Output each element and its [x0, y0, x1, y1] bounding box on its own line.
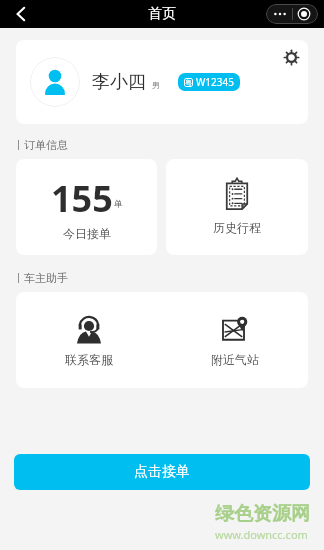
button[interactable]: 设置	[279, 45, 303, 69]
staticText: 附近气站	[211, 352, 259, 367]
staticText: W12345	[196, 75, 234, 89]
button[interactable]: 附近气站	[162, 292, 308, 388]
staticText: 男	[152, 80, 160, 90]
staticText: 今日接单	[63, 226, 111, 241]
staticText: 车主助手	[24, 271, 68, 285]
button[interactable]: 联系客服	[16, 292, 162, 388]
staticText: 粤	[185, 78, 192, 87]
staticText: 155	[51, 174, 113, 223]
button[interactable]: 历史行程	[166, 159, 308, 255]
staticText: 联系客服	[65, 352, 113, 367]
staticText: 李小四	[92, 71, 146, 94]
button[interactable]: 菜单	[266, 4, 318, 24]
staticText: 点击接单	[134, 463, 190, 481]
staticText: 绿色资源网	[215, 502, 310, 526]
staticText: 历史行程	[213, 220, 261, 235]
staticText: 单	[114, 198, 123, 209]
staticText: www.downcc.com	[215, 527, 308, 542]
staticText: 首页	[148, 5, 176, 23]
button[interactable]: 155	[16, 159, 157, 255]
staticText: 订单信息	[24, 138, 68, 152]
button[interactable]: 返回	[6, 0, 36, 28]
button[interactable]: 点击接单	[14, 454, 310, 490]
